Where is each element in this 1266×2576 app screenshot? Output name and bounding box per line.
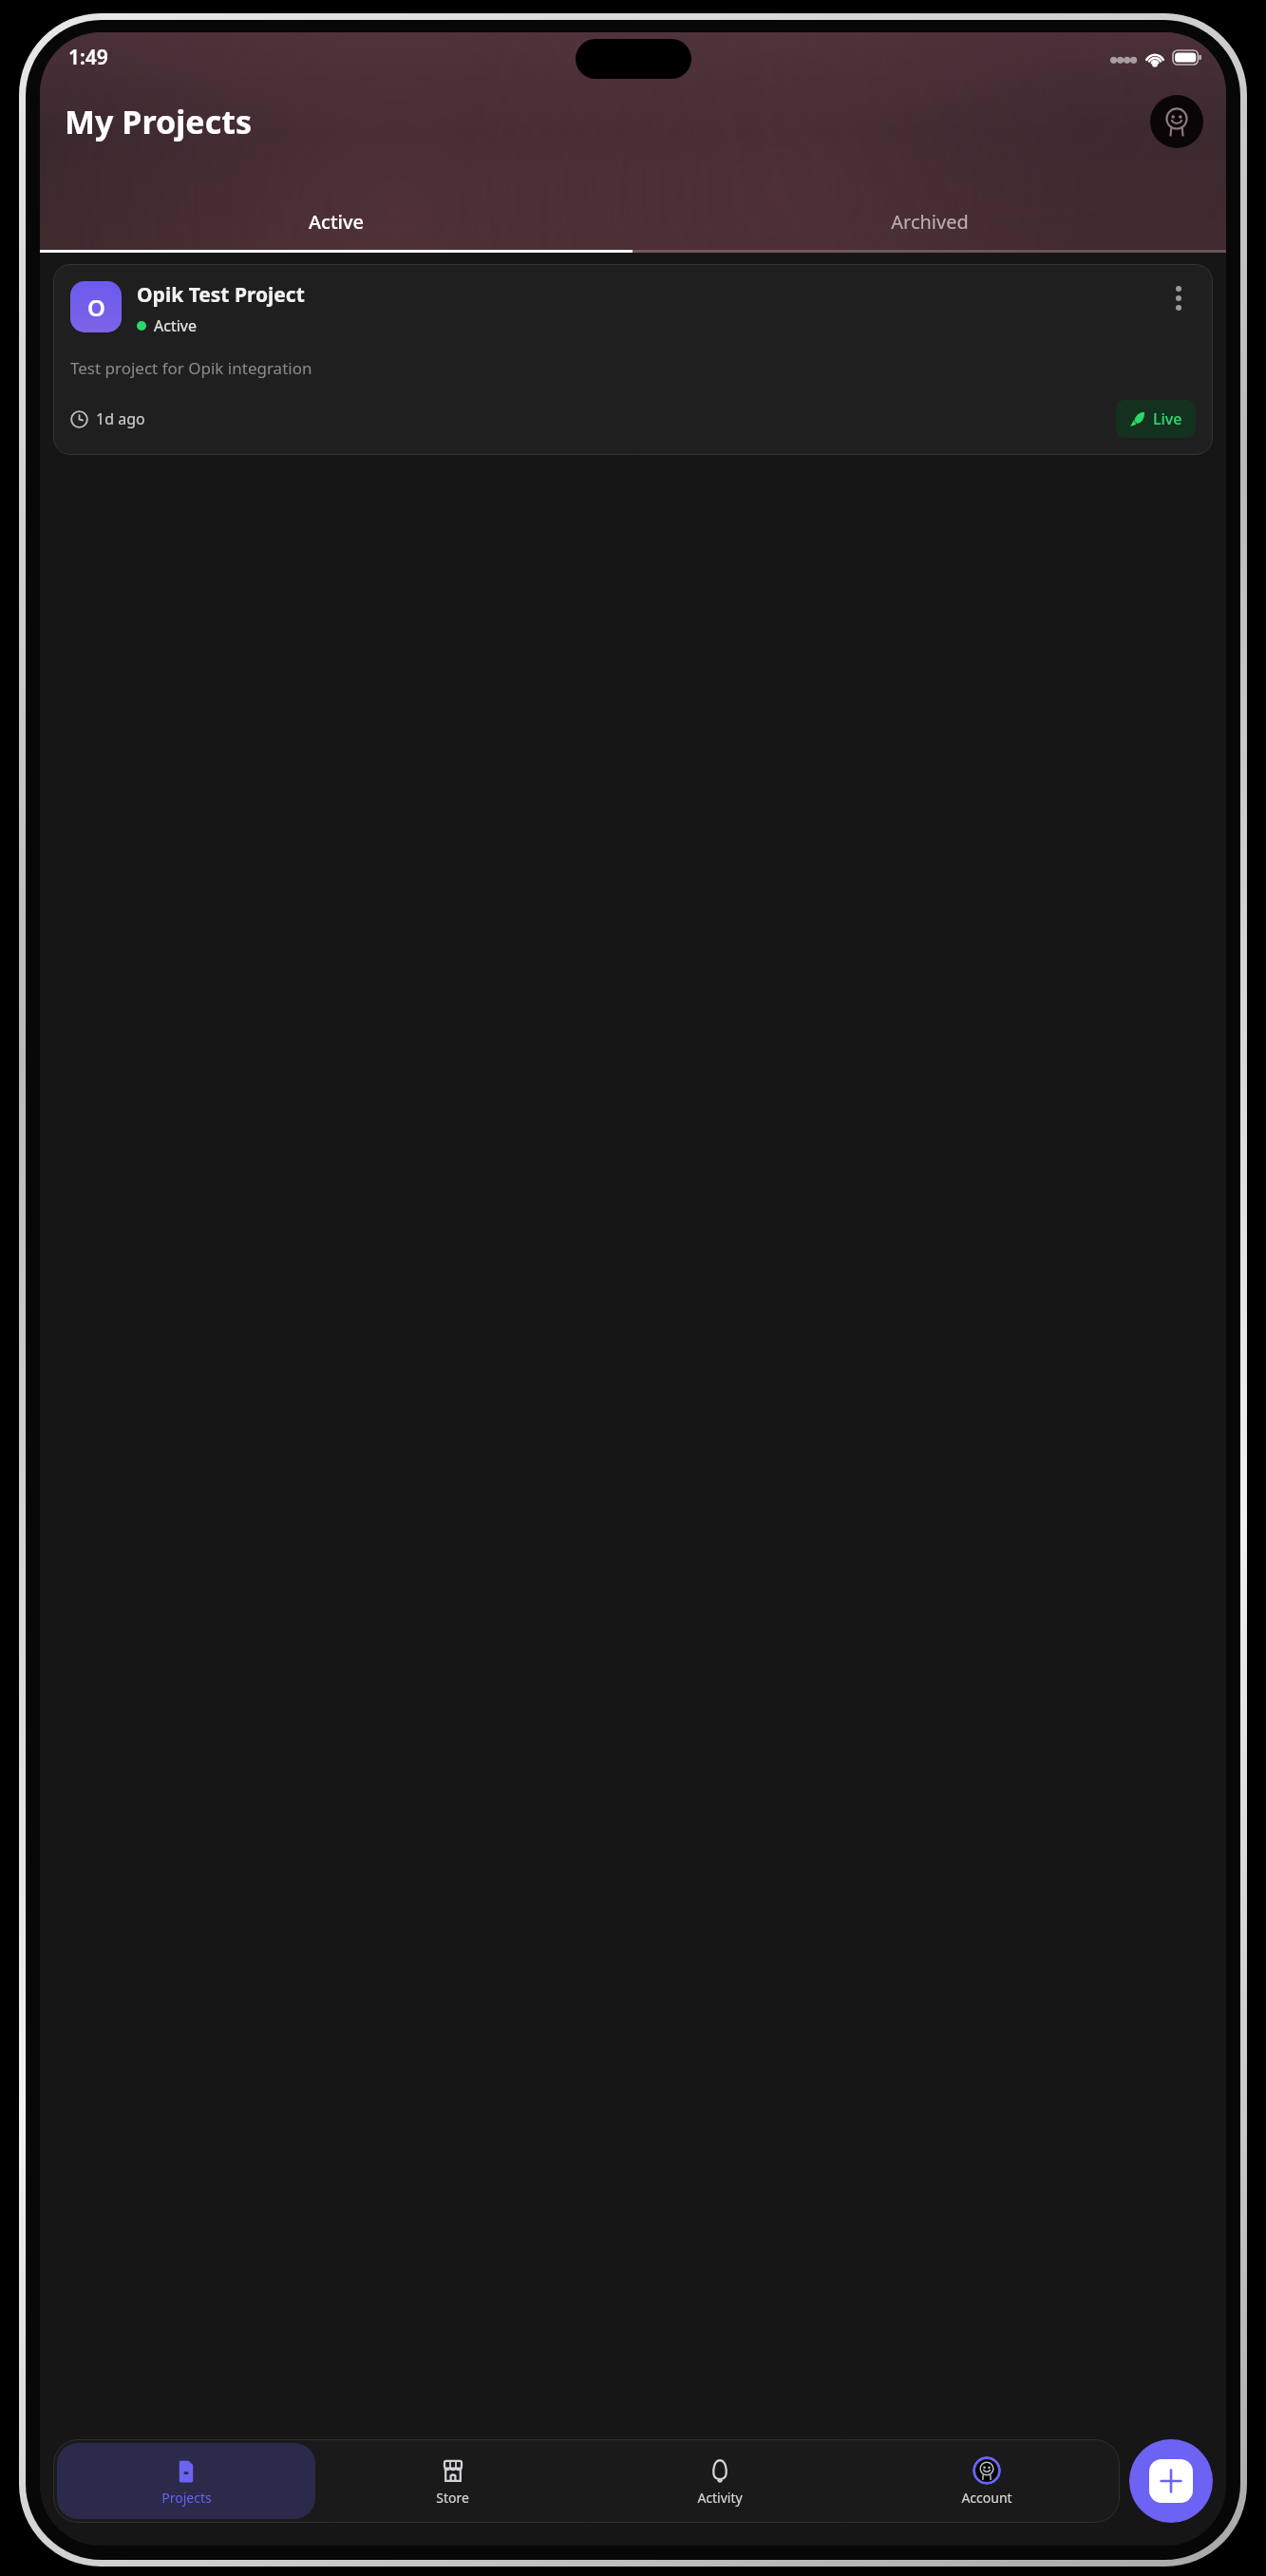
staticText: Projects	[161, 2489, 212, 2507]
staticText: Opik Test Project	[137, 281, 305, 309]
staticText: O	[87, 292, 105, 323]
staticText: Account	[961, 2489, 1012, 2507]
button[interactable]: Projects	[57, 2443, 315, 2519]
button[interactable]: Account profile	[1150, 95, 1203, 148]
staticText: Store	[436, 2489, 469, 2507]
staticText: Active	[309, 209, 364, 235]
button[interactable]: Active	[40, 193, 633, 250]
staticText: My Projects	[65, 100, 252, 143]
button[interactable]: Add project	[1129, 2439, 1213, 2523]
staticText: 1:49	[68, 44, 108, 71]
button[interactable]: More options	[1162, 281, 1196, 315]
staticText: Live	[1153, 408, 1182, 429]
staticText: Archived	[891, 209, 969, 235]
button[interactable]: Archived	[633, 193, 1226, 250]
button[interactable]: O	[53, 264, 1213, 455]
button[interactable]: Store	[323, 2443, 582, 2519]
button[interactable]: Activity	[590, 2443, 849, 2519]
button[interactable]: Live	[1116, 400, 1196, 438]
staticText: Test project for Opik integration	[70, 357, 312, 379]
staticText: Active	[154, 315, 197, 336]
button[interactable]: Account	[857, 2443, 1116, 2519]
staticText: 1d ago	[96, 408, 145, 429]
staticText: Activity	[697, 2489, 743, 2507]
